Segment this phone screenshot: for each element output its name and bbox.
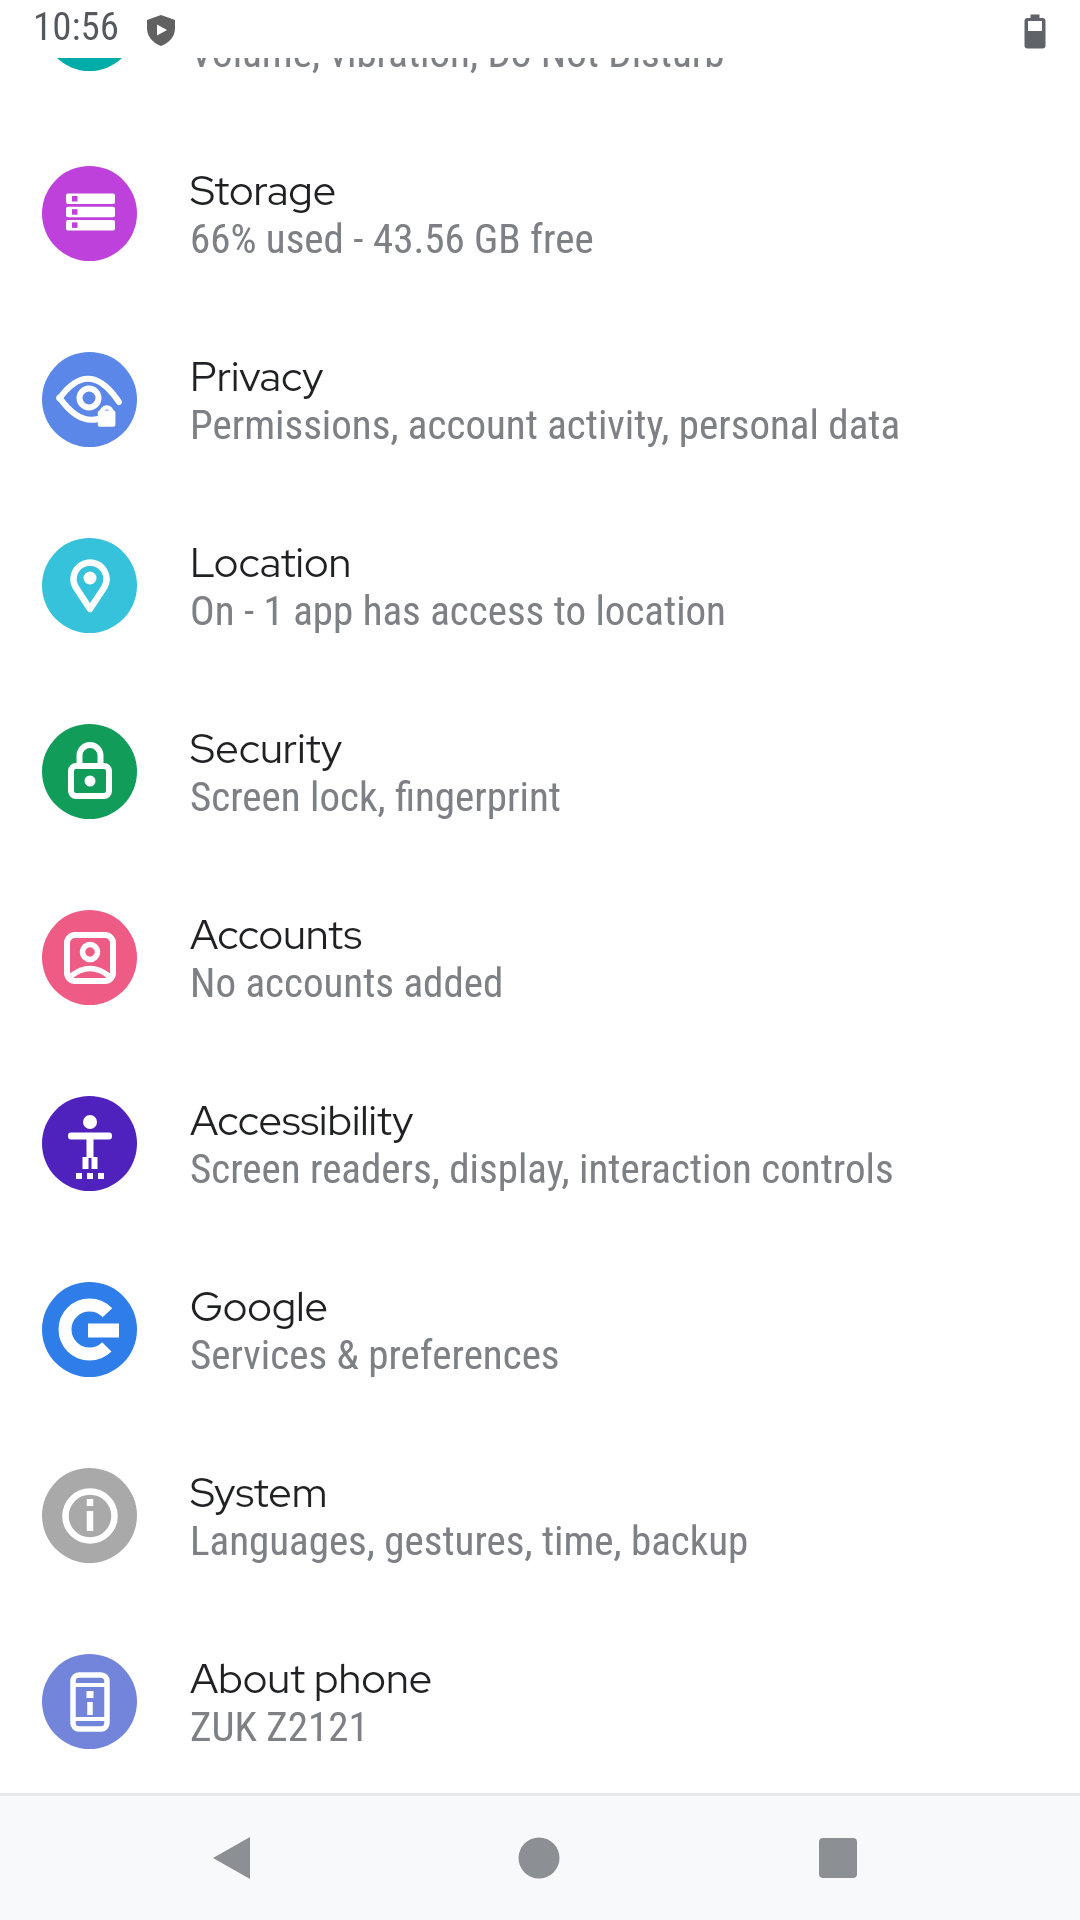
staticText: Screen readers, display, interaction con… xyxy=(190,1145,894,1193)
staticText: 10:56 xyxy=(33,4,120,50)
staticText: Privacy xyxy=(190,349,324,404)
button[interactable] xyxy=(193,1819,271,1897)
staticText: Security xyxy=(190,721,343,776)
staticText: Google xyxy=(190,1279,328,1334)
button[interactable]: Accessibility xyxy=(0,1050,1080,1236)
staticText: Volume, vibration, Do Not Disturb xyxy=(190,29,725,77)
button[interactable]: Privacy xyxy=(0,306,1080,492)
button[interactable]: Location xyxy=(0,492,1080,678)
staticText: Accounts xyxy=(190,907,363,962)
staticText: Services & preferences xyxy=(190,1331,560,1379)
button[interactable] xyxy=(500,1819,578,1897)
staticText: System xyxy=(190,1465,328,1520)
staticText: Languages, gestures, time, backup xyxy=(190,1517,749,1565)
staticText: On - 1 app has access to location xyxy=(190,587,726,635)
button[interactable]: Security xyxy=(0,678,1080,864)
staticText: No accounts added xyxy=(190,959,504,1007)
staticText: Screen lock, fingerprint xyxy=(190,773,561,821)
staticText: 66% used - 43.56 GB free xyxy=(190,215,594,263)
button[interactable] xyxy=(799,1819,877,1897)
staticText: Permissions, account activity, personal … xyxy=(190,401,901,449)
button[interactable]: About phone xyxy=(0,1608,1080,1794)
button[interactable]: Google xyxy=(0,1236,1080,1422)
button[interactable]: Sound xyxy=(0,0,1080,120)
button[interactable]: Accounts xyxy=(0,864,1080,1050)
staticText: About phone xyxy=(190,1651,433,1706)
button[interactable]: System xyxy=(0,1422,1080,1608)
staticText: Storage xyxy=(190,163,337,218)
staticText: Location xyxy=(190,535,352,590)
button[interactable]: Storage xyxy=(0,120,1080,306)
staticText: Accessibility xyxy=(190,1093,414,1148)
staticText: ZUK Z2121 xyxy=(190,1703,369,1751)
